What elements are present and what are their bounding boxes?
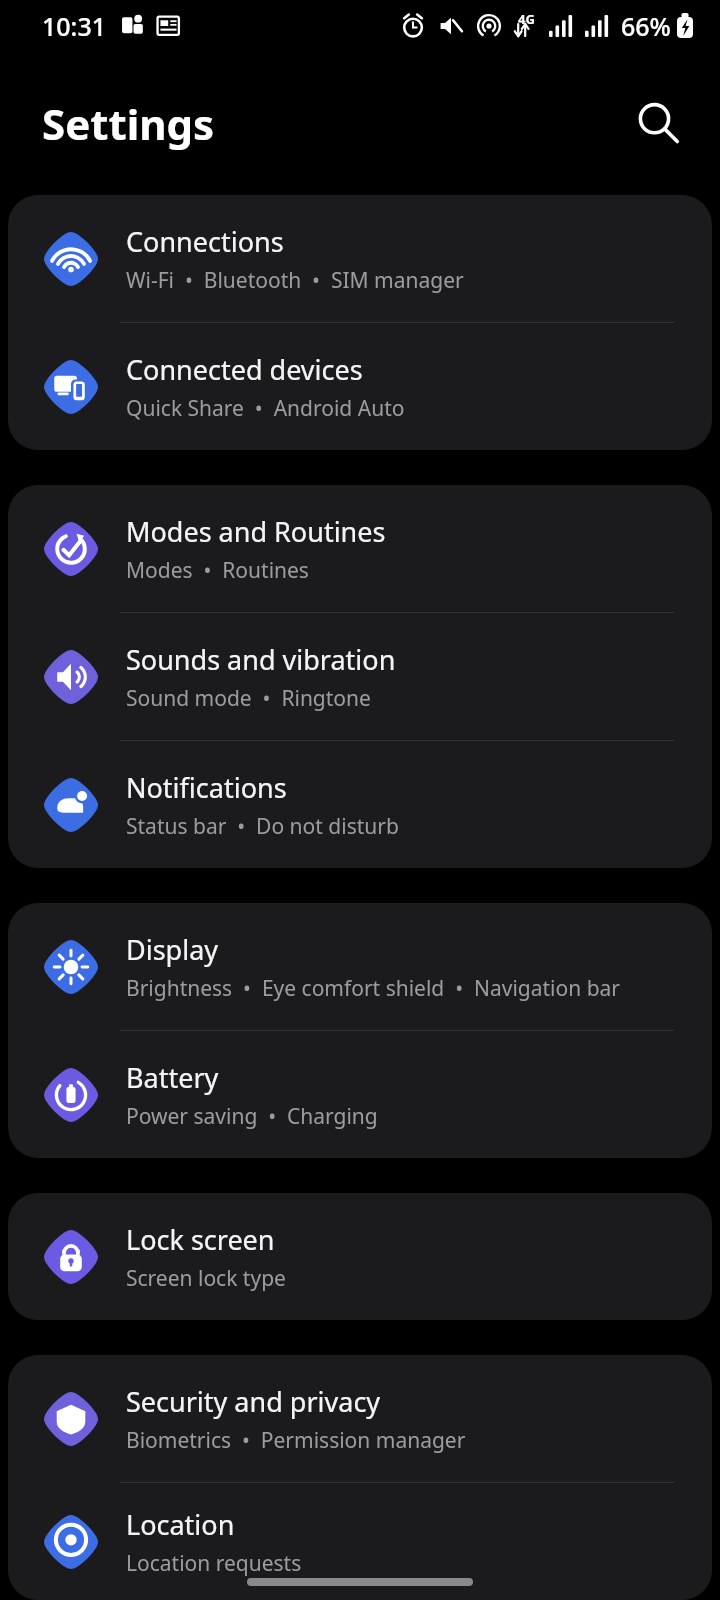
button[interactable]: Connected devices	[8, 323, 712, 450]
staticText: 10:31	[42, 9, 107, 43]
staticText: Wi-Fi • Bluetooth • SIM manager	[126, 266, 464, 295]
staticText: Display	[126, 931, 219, 968]
button[interactable]: Display	[8, 903, 712, 1030]
staticText: Biometrics • Permission manager	[126, 1426, 466, 1455]
button[interactable]: Search	[626, 92, 690, 156]
staticText: Lock screen	[126, 1221, 275, 1258]
button[interactable]: Lock screen	[8, 1193, 712, 1320]
staticText: Modes and Routines	[126, 513, 386, 550]
staticText: Power saving • Charging	[126, 1102, 378, 1131]
staticText: Quick Share • Android Auto	[126, 394, 405, 423]
staticText: Settings	[42, 95, 215, 152]
button[interactable]: Modes and Routines	[8, 485, 712, 612]
button[interactable]: Location	[8, 1483, 712, 1600]
staticText: 4G	[518, 10, 535, 28]
staticText: Security and privacy	[126, 1383, 381, 1420]
staticText: Connections	[126, 223, 284, 260]
button[interactable]: Security and privacy	[8, 1355, 712, 1482]
staticText: Notifications	[126, 769, 287, 806]
button[interactable]: Connections	[8, 195, 712, 322]
staticText: 66%	[621, 9, 671, 43]
button[interactable]: Sounds and vibration	[8, 613, 712, 740]
button[interactable]: Notifications	[8, 741, 712, 868]
staticText: Sounds and vibration	[126, 641, 396, 678]
staticText: Modes • Routines	[126, 556, 309, 585]
staticText: Battery	[126, 1059, 219, 1096]
staticText: Location	[126, 1506, 235, 1543]
staticText: Screen lock type	[126, 1264, 286, 1293]
staticText: Status bar • Do not disturb	[126, 812, 399, 841]
staticText: Location requests	[126, 1549, 302, 1578]
staticText: Brightness • Eye comfort shield • Naviga…	[126, 974, 621, 1003]
staticText: Connected devices	[126, 351, 363, 388]
staticText: Sound mode • Ringtone	[126, 684, 371, 713]
button[interactable]: Battery	[8, 1031, 712, 1158]
